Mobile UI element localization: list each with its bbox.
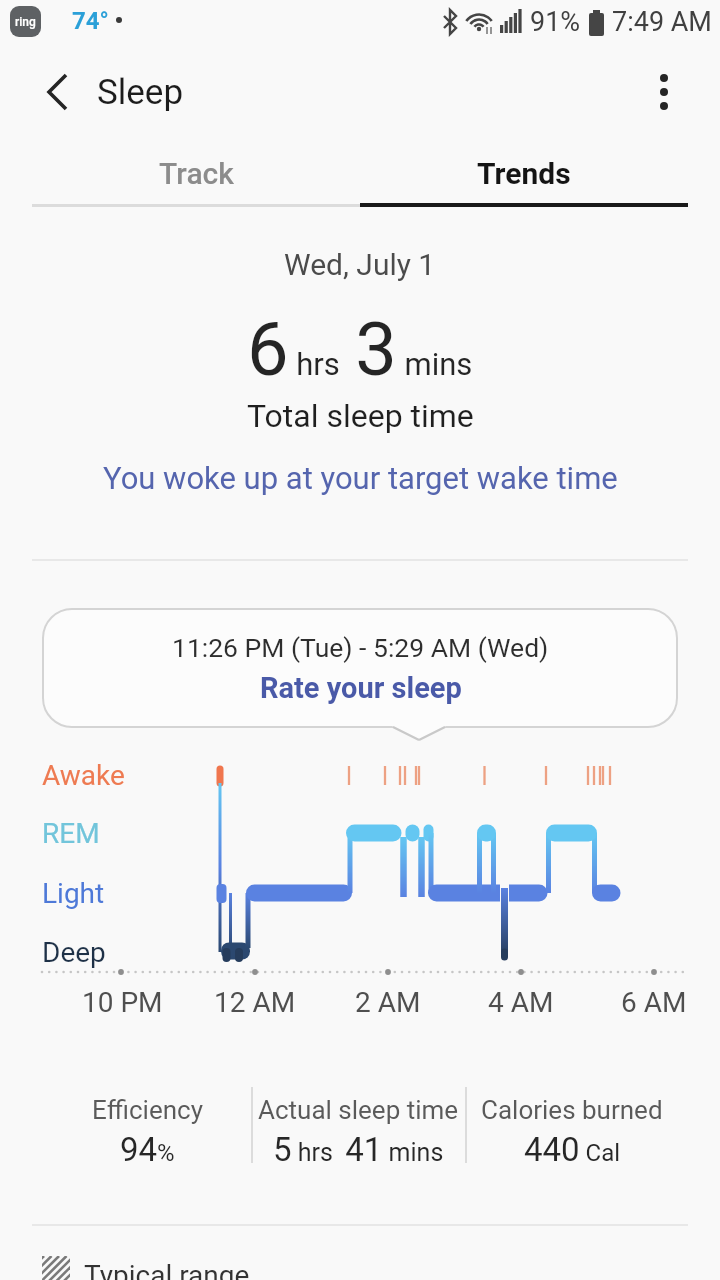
staticText: ring xyxy=(15,15,36,29)
button[interactable] xyxy=(636,64,692,120)
button[interactable]: 11:26 PM (Tue) - 5:29 AM (Wed) xyxy=(42,608,678,728)
staticText: 12 AM xyxy=(214,986,296,1019)
staticText: Calories burned xyxy=(481,1095,663,1125)
staticText: Track xyxy=(159,156,234,191)
staticText: Actual sleep time xyxy=(258,1095,459,1125)
staticText: 94% xyxy=(120,1130,175,1169)
staticText: Light xyxy=(42,877,105,910)
button[interactable]: Trends xyxy=(360,140,688,206)
staticText: Wed, July 1 xyxy=(284,247,436,282)
staticText: 2 AM xyxy=(355,986,421,1019)
staticText: You woke up at your target wake time xyxy=(103,460,618,496)
staticText: Sleep xyxy=(97,72,184,113)
staticText: Trends xyxy=(477,156,571,191)
button[interactable]: Track xyxy=(32,140,360,206)
staticText: 440 Cal xyxy=(524,1130,621,1169)
staticText: 6 hrs 3 mins xyxy=(247,306,473,386)
staticText: 74° xyxy=(72,7,109,35)
staticText: Deep xyxy=(42,936,106,969)
staticText: Total sleep time xyxy=(247,397,474,435)
staticText: Typical range xyxy=(84,1259,250,1280)
staticText: 11:26 PM (Tue) - 5:29 AM (Wed) xyxy=(172,632,549,663)
button[interactable] xyxy=(30,64,86,120)
staticText: REM xyxy=(42,817,100,850)
staticText: 91% xyxy=(530,6,581,38)
staticText: 6 AM xyxy=(621,986,687,1019)
staticText: 5 hrs 41 mins xyxy=(273,1130,444,1169)
staticText: Efficiency xyxy=(92,1095,203,1125)
staticText: 7:49 AM xyxy=(612,6,712,38)
staticText: 4 AM xyxy=(488,986,554,1019)
staticText: 10 PM xyxy=(82,986,163,1019)
staticText: Rate your sleep xyxy=(260,671,462,705)
staticText: Awake xyxy=(42,759,125,792)
